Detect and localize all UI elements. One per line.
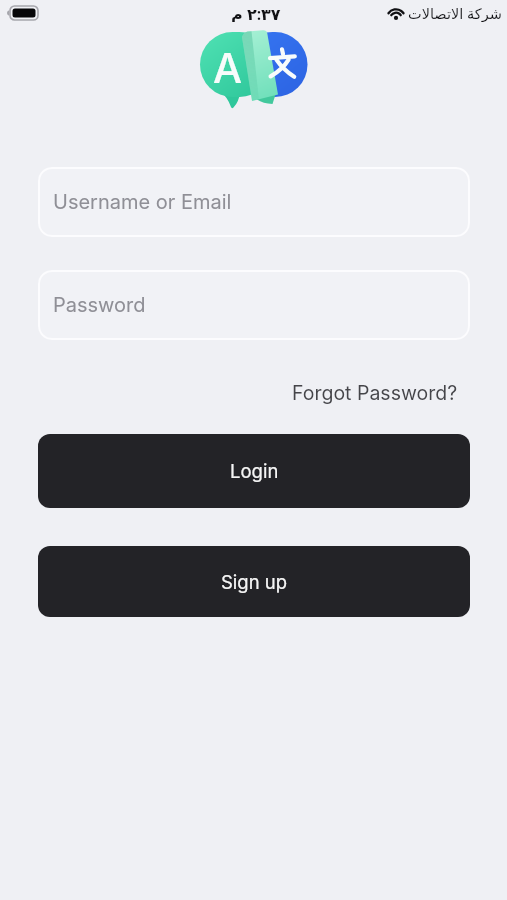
button[interactable]: Username or Email (38, 167, 470, 237)
staticText: Password (53, 293, 146, 317)
staticText: Forgot Password? (292, 381, 458, 405)
button[interactable]: Login (38, 434, 470, 508)
staticText: Sign up (221, 571, 288, 593)
staticText: Username or Email (53, 190, 232, 214)
staticText: A (213, 43, 243, 84)
staticText: شركة الاتصالات (408, 3, 502, 22)
button[interactable]: Password (38, 270, 470, 340)
staticText: ٢:٣٧ م (231, 3, 281, 22)
staticText: Login (230, 460, 279, 482)
button[interactable]: Forgot Password? (278, 379, 458, 407)
button[interactable]: Sign up (38, 546, 470, 617)
